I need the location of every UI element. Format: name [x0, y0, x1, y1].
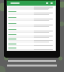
button[interactable]: Dictionary app screenshot: [0, 0, 64, 72]
